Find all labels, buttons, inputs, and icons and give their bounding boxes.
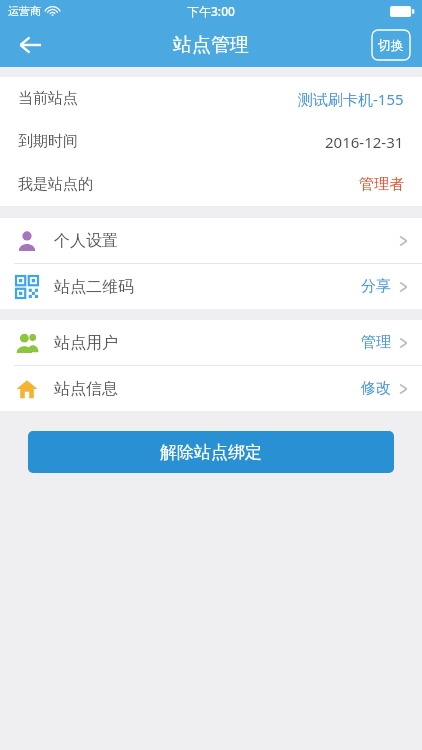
staticText: 站点用户	[54, 333, 118, 353]
button[interactable]: 解除站点绑定	[28, 431, 394, 473]
staticText: 站点信息	[54, 379, 118, 399]
staticText: 管理	[361, 333, 391, 352]
staticText: 分享	[361, 277, 391, 296]
staticText: 2016-12-31	[325, 132, 404, 152]
button[interactable]: 站点信息	[0, 366, 422, 411]
button[interactable]: 到期时间	[0, 120, 422, 163]
staticText: 我是站点的	[18, 175, 93, 194]
staticText: 切换	[378, 37, 404, 53]
button[interactable]: 切换	[372, 30, 410, 60]
button[interactable]: 我是站点的	[0, 163, 422, 206]
button[interactable]: 个人设置	[0, 218, 422, 263]
button[interactable]: 当前站点	[0, 77, 422, 120]
staticText: 个人设置	[54, 231, 118, 251]
staticText: 到期时间	[18, 132, 78, 151]
button[interactable]: 站点用户	[0, 320, 422, 365]
staticText: 解除站点绑定	[160, 442, 262, 463]
button[interactable]: 站点二维码	[0, 264, 422, 309]
staticText: 下午3:00	[187, 3, 235, 19]
staticText: 管理者	[359, 175, 404, 194]
staticText: 运营商	[8, 4, 41, 18]
button[interactable]: Back	[8, 23, 52, 67]
staticText: 当前站点	[18, 89, 78, 108]
staticText: 站点二维码	[54, 277, 134, 297]
staticText: 站点管理	[173, 33, 249, 57]
staticText: 修改	[361, 379, 391, 398]
staticText: 测试刷卡机-155	[298, 89, 404, 109]
